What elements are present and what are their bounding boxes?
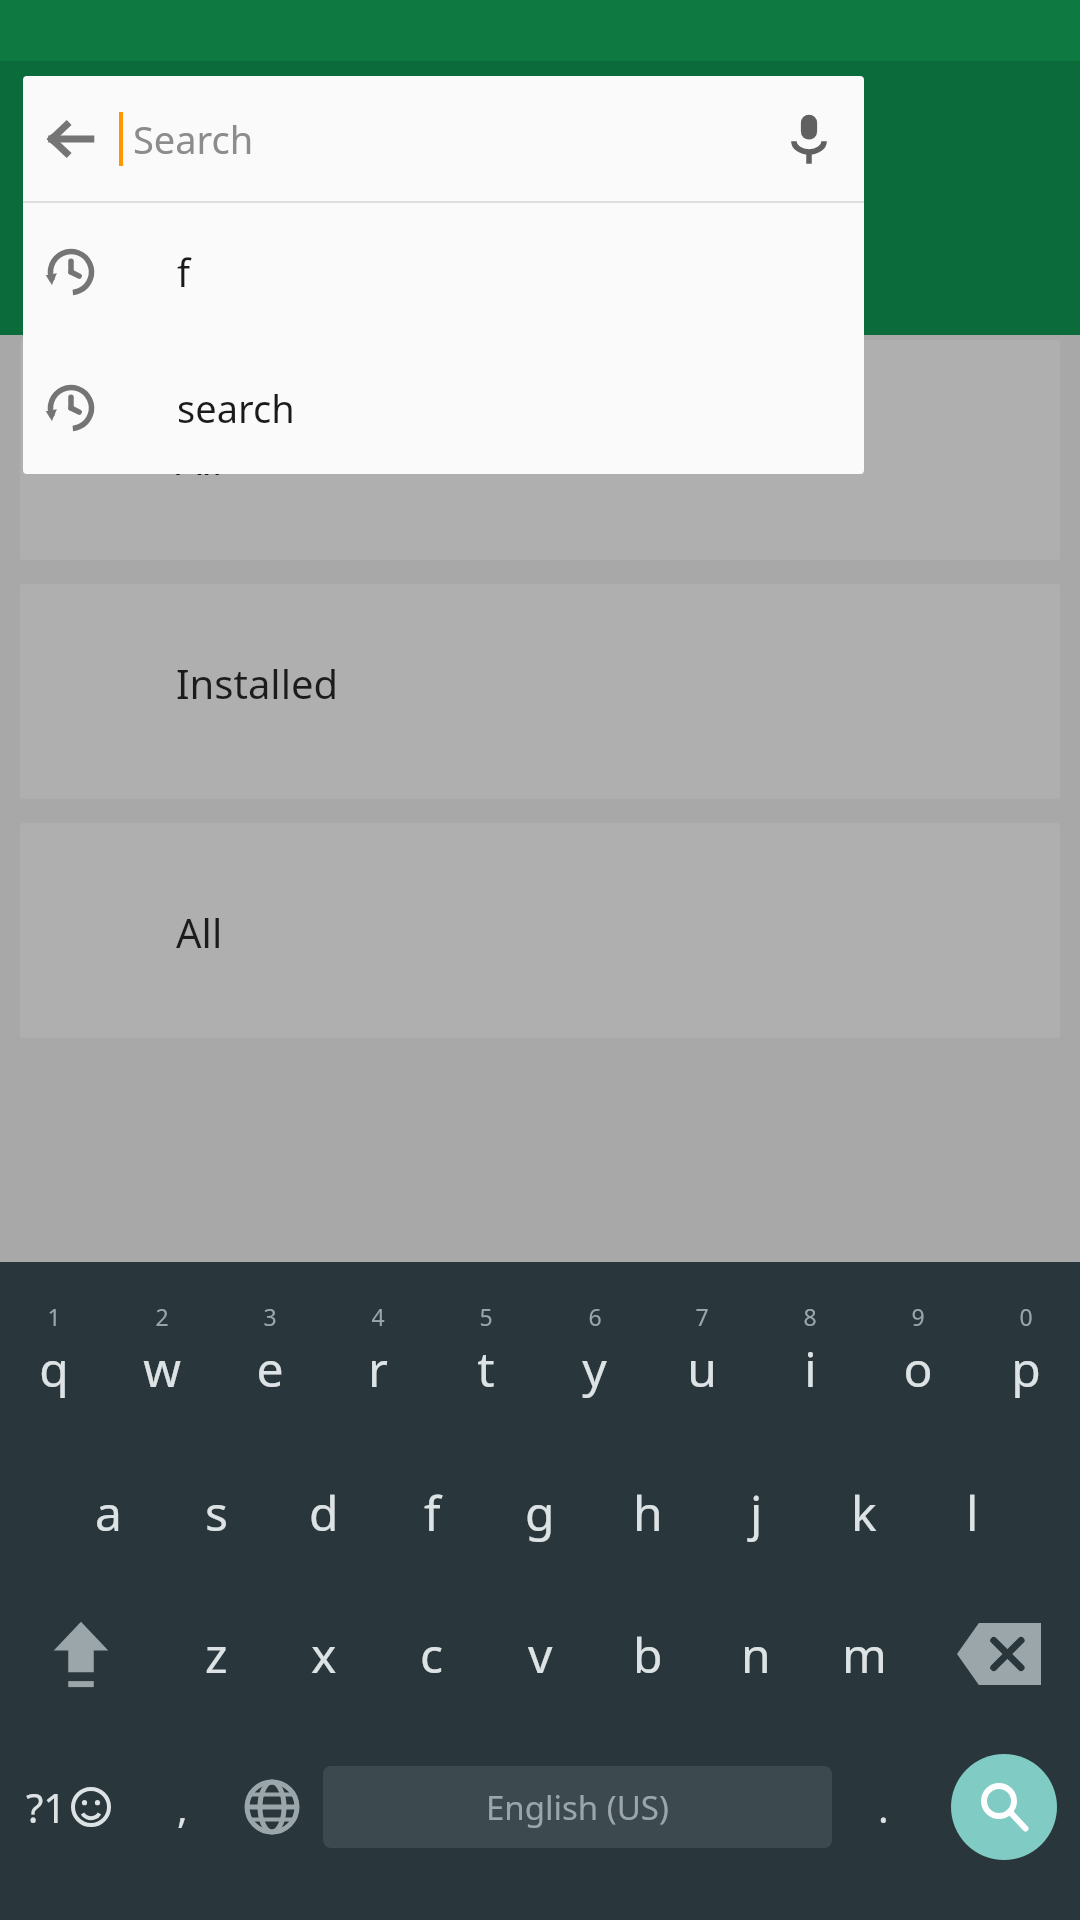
staticText: 0 — [1019, 1301, 1033, 1332]
staticText: 4 — [371, 1301, 385, 1332]
staticText: , — [177, 1780, 188, 1834]
button[interactable]: h — [594, 1442, 702, 1582]
button[interactable]: a — [54, 1442, 162, 1582]
button[interactable]: 4 — [324, 1276, 432, 1426]
staticText: English (US) — [486, 1785, 669, 1830]
button[interactable]: 5 — [432, 1276, 540, 1426]
staticText: q — [39, 1336, 69, 1401]
button[interactable]: All — [20, 340, 1060, 560]
staticText: f — [424, 1480, 441, 1545]
staticText: c — [420, 1622, 444, 1687]
button[interactable]: 9 — [864, 1276, 972, 1426]
staticText: w — [143, 1336, 181, 1401]
button[interactable]: s — [162, 1442, 270, 1582]
button[interactable]: v — [486, 1584, 594, 1724]
staticText: m — [842, 1622, 887, 1687]
staticText: v — [528, 1622, 553, 1687]
staticText: 7 — [695, 1301, 709, 1332]
staticText: g — [525, 1480, 555, 1545]
button[interactable]: d — [270, 1442, 378, 1582]
button[interactable]: l — [918, 1442, 1026, 1582]
button[interactable]: Backspace — [918, 1584, 1080, 1724]
button[interactable]: 1 — [0, 1276, 108, 1426]
button[interactable]: f — [378, 1442, 486, 1582]
staticText: . — [878, 1780, 889, 1834]
staticText: y — [582, 1336, 607, 1401]
staticText: z — [205, 1622, 228, 1687]
staticText: 3 — [263, 1301, 277, 1332]
staticText: t — [477, 1336, 495, 1401]
button[interactable]: 6 — [540, 1276, 648, 1426]
staticText: 6 — [588, 1301, 602, 1332]
staticText: 9 — [911, 1301, 925, 1332]
button[interactable]: x — [270, 1584, 378, 1724]
button[interactable]: n — [702, 1584, 810, 1724]
staticText: ?1 — [26, 1780, 67, 1834]
button[interactable]: search — [23, 341, 864, 474]
button[interactable]: c — [378, 1584, 486, 1724]
staticText: e — [256, 1336, 284, 1401]
button[interactable]: Search — [119, 76, 754, 201]
staticText: i — [804, 1336, 817, 1401]
button[interactable]: All — [20, 823, 1060, 1038]
staticText: l — [966, 1480, 979, 1545]
staticText: Installed — [176, 656, 339, 710]
button[interactable]: b — [594, 1584, 702, 1724]
button[interactable]: 2 — [108, 1276, 216, 1426]
staticText: k — [851, 1480, 877, 1545]
staticText: o — [903, 1336, 933, 1401]
button[interactable]: 3 — [216, 1276, 324, 1426]
button[interactable]: 0 — [972, 1276, 1080, 1426]
staticText: b — [633, 1622, 663, 1687]
button[interactable]: z — [162, 1584, 270, 1724]
staticText: d — [309, 1480, 339, 1545]
staticText: f — [177, 246, 191, 298]
staticText: s — [205, 1480, 228, 1545]
button[interactable]: g — [486, 1442, 594, 1582]
staticText: r — [368, 1336, 388, 1401]
staticText: search — [177, 382, 295, 434]
staticText: n — [741, 1622, 771, 1687]
button[interactable]: 7 — [648, 1276, 756, 1426]
staticText: 2 — [155, 1301, 169, 1332]
button[interactable]: English (US) — [323, 1766, 832, 1848]
button[interactable]: Shift — [0, 1584, 162, 1724]
staticText: x — [311, 1622, 337, 1687]
button[interactable]: k — [810, 1442, 918, 1582]
button[interactable]: j — [702, 1442, 810, 1582]
staticText: All — [176, 432, 223, 486]
button[interactable]: Installed — [20, 584, 1060, 799]
button[interactable]: Symbols and emoji — [0, 1732, 137, 1882]
button[interactable]: Voice search — [754, 84, 864, 194]
button[interactable]: Change language — [227, 1732, 317, 1882]
staticText: 5 — [479, 1301, 493, 1332]
staticText: 8 — [803, 1301, 817, 1332]
staticText: Search — [133, 113, 254, 165]
button[interactable]: 8 — [756, 1276, 864, 1426]
staticText: All — [176, 905, 223, 959]
button[interactable]: m — [810, 1584, 918, 1724]
staticText: h — [633, 1480, 663, 1545]
staticText: a — [95, 1480, 122, 1545]
button[interactable]: f — [23, 203, 864, 341]
button[interactable]: Back — [23, 91, 119, 187]
button[interactable]: Search — [928, 1732, 1080, 1882]
staticText: u — [687, 1336, 717, 1401]
button[interactable]: . — [838, 1732, 928, 1882]
staticText: j — [750, 1480, 763, 1545]
staticText: 1 — [47, 1301, 61, 1332]
button[interactable]: , — [137, 1732, 227, 1882]
staticText: p — [1011, 1336, 1041, 1401]
